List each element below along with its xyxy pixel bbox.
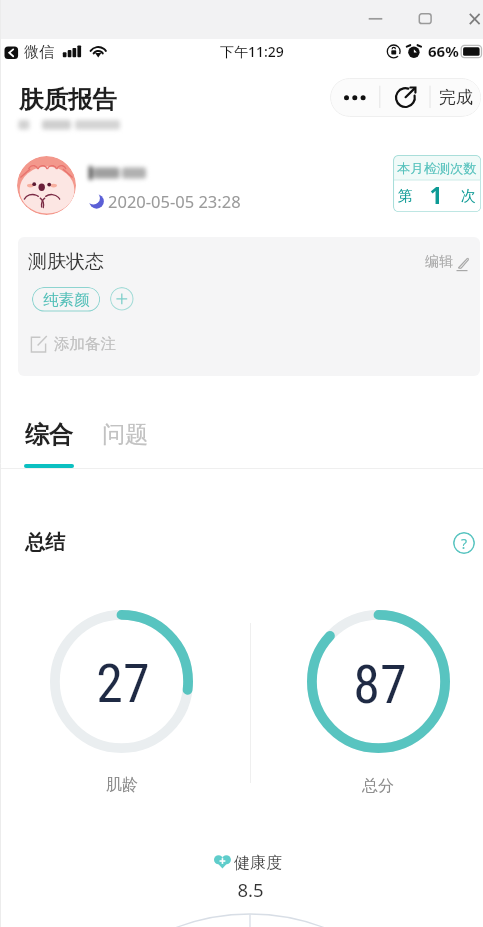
button[interactable]: 问题 — [89, 407, 161, 461]
button[interactable] — [393, 155, 481, 212]
staticText: ? — [461, 534, 468, 553]
staticText: 编辑 — [425, 253, 453, 271]
staticText: 下午11:29 — [220, 42, 284, 61]
staticText: 次 — [461, 187, 476, 206]
button[interactable]: Maximize — [410, 5, 441, 33]
button[interactable]: Add tag — [110, 287, 134, 311]
button[interactable]: Close — [459, 5, 483, 33]
staticText: 27 — [96, 652, 150, 704]
button[interactable]: 完成 — [433, 80, 479, 115]
button[interactable]: Minimize — [360, 5, 391, 33]
staticText: 66% — [428, 41, 459, 61]
staticText: 添加备注 — [54, 334, 116, 354]
staticText: 第 — [398, 187, 413, 206]
staticText: 完成 — [439, 87, 473, 108]
button[interactable]: 编辑 — [420, 248, 474, 276]
staticText: 总结 — [25, 530, 65, 555]
staticText: 肌龄 — [106, 775, 138, 795]
button[interactable]: Profile photo — [17, 156, 76, 215]
button[interactable]: Share — [391, 82, 421, 114]
staticText: 总分 — [362, 776, 394, 796]
staticText: 微信 — [24, 43, 54, 62]
staticText: 纯素颜 — [43, 290, 90, 310]
staticText: 本月检测次数 — [397, 160, 477, 177]
staticText: 问题 — [102, 420, 148, 449]
staticText: 测肤状态 — [28, 250, 104, 274]
staticText: 87 — [353, 653, 407, 705]
button[interactable]: More options — [333, 80, 379, 115]
button[interactable]: Back to WeChat — [2, 43, 22, 63]
staticText: 综合 — [25, 420, 73, 450]
staticText: 2020-05-05 23:28 — [108, 190, 241, 212]
staticText: 健康度 — [234, 853, 282, 873]
staticText: 8.5 — [237, 877, 264, 902]
button[interactable]: 综合 — [10, 408, 88, 462]
staticText: 1 — [429, 179, 443, 210]
button[interactable]: Help — [453, 532, 475, 554]
button[interactable]: 纯素颜 — [32, 287, 100, 312]
button[interactable]: 添加备注 — [28, 330, 158, 358]
staticText: 肤质报告 — [19, 84, 117, 115]
